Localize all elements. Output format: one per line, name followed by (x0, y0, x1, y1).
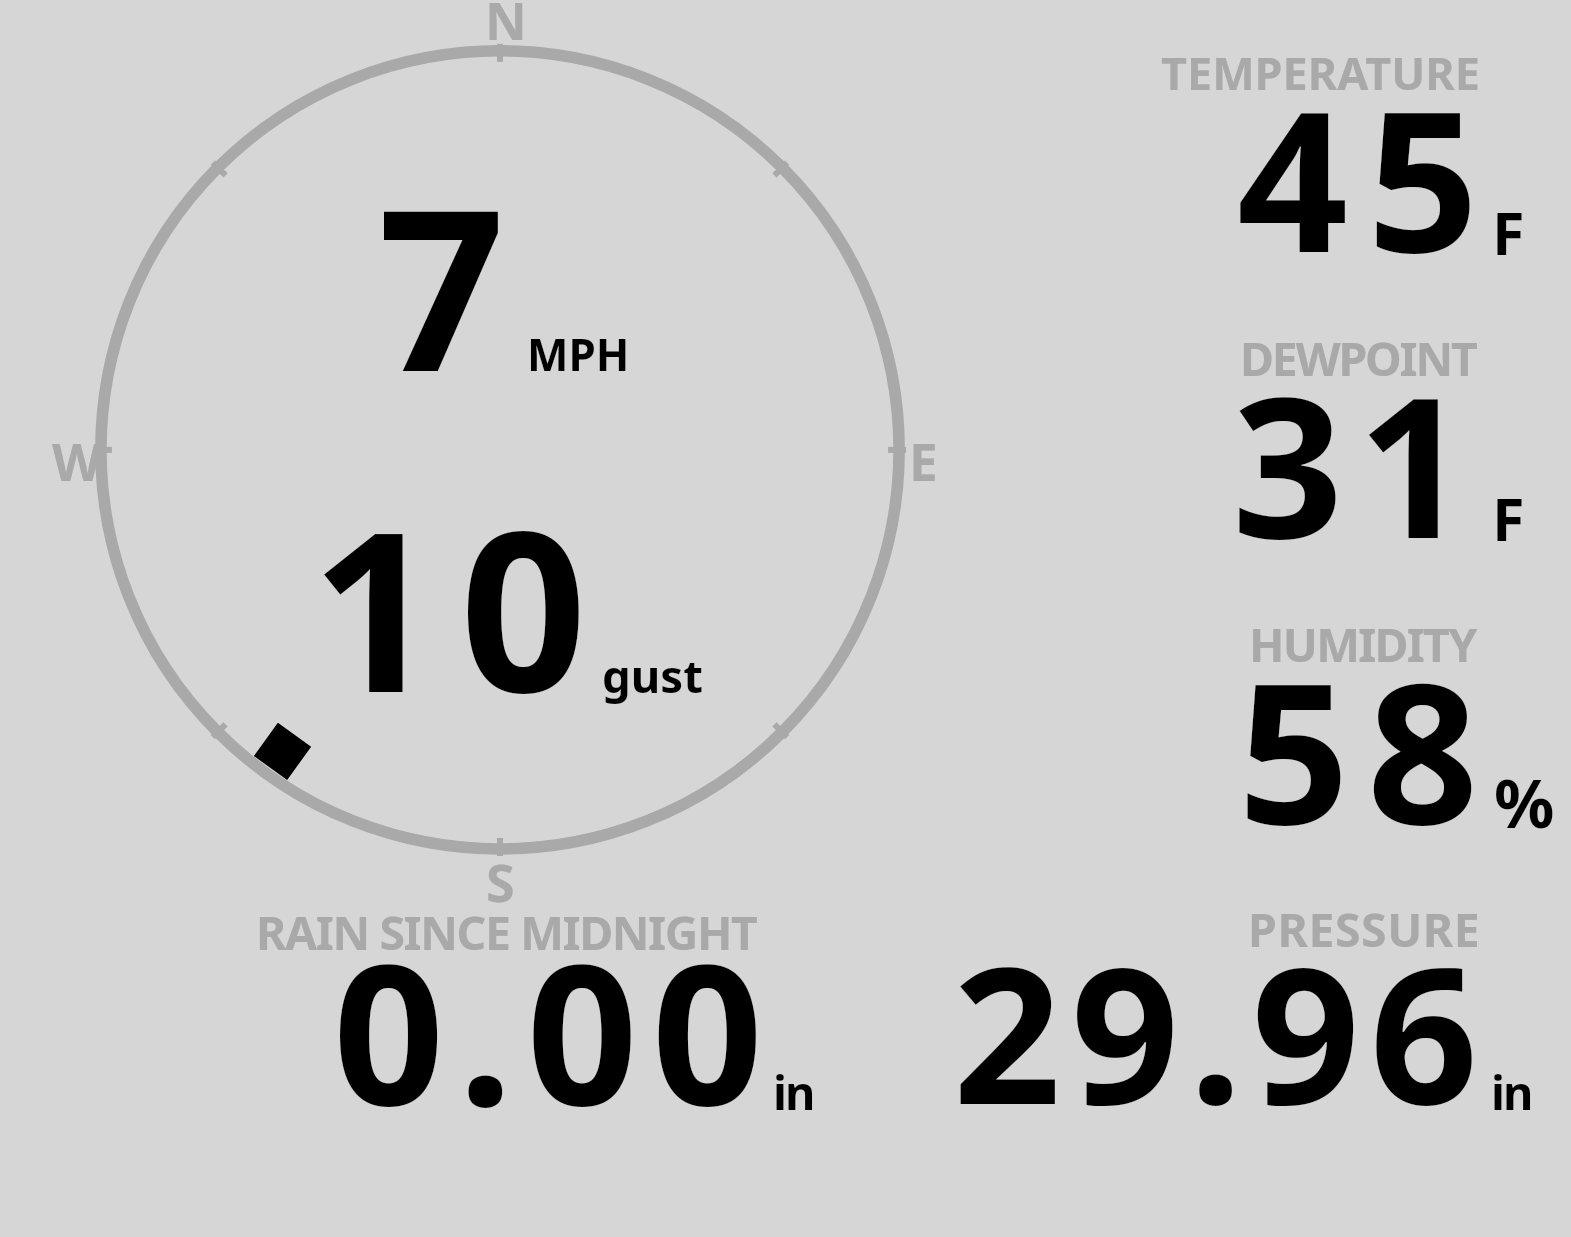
staticText: 58 (1238, 616, 1497, 881)
staticText: gust (602, 644, 703, 706)
button[interactable]: Wind speed 7 miles per hour (370, 190, 640, 380)
button[interactable]: Wind direction compass, south-west (95, 45, 905, 855)
staticText: in (773, 1060, 814, 1124)
staticText: 10 (311, 455, 610, 757)
button[interactable]: Humidity 58 percent (1155, 620, 1555, 835)
button[interactable]: Dewpoint 31 degrees Fahrenheit (1155, 335, 1540, 550)
staticText: HUMIDITY (1249, 612, 1476, 675)
staticText: PRESSURE (1248, 897, 1481, 960)
staticText: F (1492, 192, 1525, 273)
staticText: TEMPERATURE (1161, 42, 1480, 103)
staticText: W (52, 426, 102, 496)
staticText: 45 (1237, 44, 1498, 309)
button[interactable]: Pressure 29.96 inches (950, 905, 1540, 1120)
staticText: in (1491, 1060, 1532, 1124)
staticText: RAIN SINCE MIDNIGHT (256, 900, 757, 963)
staticText: F (1492, 478, 1525, 559)
staticText: MPH (527, 324, 630, 384)
staticText: DEWPOINT (1240, 326, 1476, 389)
staticText: 7 (378, 133, 506, 436)
button[interactable]: Wind gust 10 miles per hour (320, 520, 710, 710)
staticText: 0.00 (333, 897, 777, 1162)
staticText: E (909, 426, 938, 496)
staticText: N (485, 0, 527, 55)
staticText: 29.96 (953, 902, 1488, 1160)
button[interactable]: Temperature 45 degrees Fahrenheit (1155, 50, 1540, 265)
staticText: 31 (1232, 330, 1483, 595)
staticText: S (486, 846, 515, 917)
staticText: % (1494, 756, 1555, 847)
button[interactable]: Rain since midnight 0.00 inches (255, 905, 815, 1120)
